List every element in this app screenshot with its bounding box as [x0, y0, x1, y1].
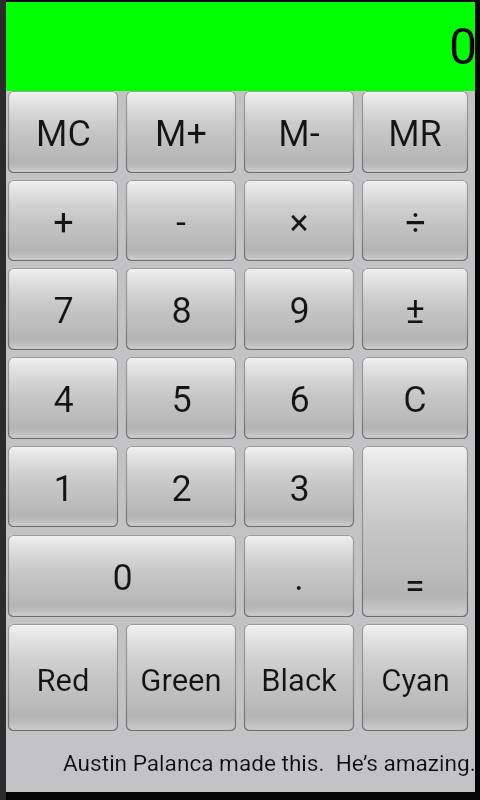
staticText: Black: [261, 662, 337, 698]
staticText: 1: [53, 468, 74, 510]
staticText: M+: [155, 113, 207, 155]
staticText: 0: [449, 18, 478, 77]
staticText: Green: [140, 662, 222, 698]
staticText: 5: [171, 379, 192, 421]
button[interactable]: ÷: [362, 180, 468, 261]
button[interactable]: 6: [244, 357, 354, 439]
staticText: MR: [388, 113, 442, 155]
staticText: -: [176, 202, 186, 244]
button[interactable]: 3: [244, 446, 354, 527]
staticText: 3: [289, 468, 310, 510]
staticText: C: [403, 379, 427, 421]
staticText: Cyan: [381, 662, 450, 698]
staticText: 7: [53, 290, 74, 332]
staticText: ÷: [405, 202, 426, 244]
staticText: Red: [36, 662, 90, 698]
button[interactable]: Cyan: [362, 624, 468, 731]
button[interactable]: =: [362, 446, 468, 617]
button[interactable]: ±: [362, 268, 468, 350]
button[interactable]: Green: [126, 624, 236, 731]
button[interactable]: Red: [8, 624, 118, 731]
button[interactable]: M-: [244, 91, 354, 173]
button[interactable]: 5: [126, 357, 236, 439]
staticText: .: [294, 557, 304, 599]
staticText: M-: [278, 113, 320, 155]
staticText: =: [405, 565, 425, 607]
staticText: 0: [112, 557, 133, 599]
staticText: +: [53, 202, 74, 244]
button[interactable]: MR: [362, 91, 468, 173]
button[interactable]: 8: [126, 268, 236, 350]
button[interactable]: ×: [244, 180, 354, 261]
button[interactable]: 7: [8, 268, 118, 350]
button[interactable]: 1: [8, 446, 118, 527]
button[interactable]: .: [244, 535, 354, 617]
staticText: Austin Palanca made this. He’s amazing.: [63, 750, 476, 776]
staticText: 4: [53, 379, 74, 421]
button[interactable]: 2: [126, 446, 236, 527]
button[interactable]: +: [8, 180, 118, 261]
button[interactable]: C: [362, 357, 468, 439]
staticText: MC: [36, 113, 91, 155]
button[interactable]: MC: [8, 91, 118, 173]
button[interactable]: 9: [244, 268, 354, 350]
staticText: 9: [289, 290, 310, 332]
staticText: 6: [289, 379, 310, 421]
button[interactable]: 4: [8, 357, 118, 439]
button[interactable]: Black: [244, 624, 354, 731]
button[interactable]: M+: [126, 91, 236, 173]
staticText: 2: [171, 468, 192, 510]
staticText: 8: [171, 290, 192, 332]
button[interactable]: 0: [8, 535, 236, 617]
staticText: ×: [289, 202, 309, 244]
staticText: ±: [405, 290, 425, 332]
button[interactable]: -: [126, 180, 236, 261]
